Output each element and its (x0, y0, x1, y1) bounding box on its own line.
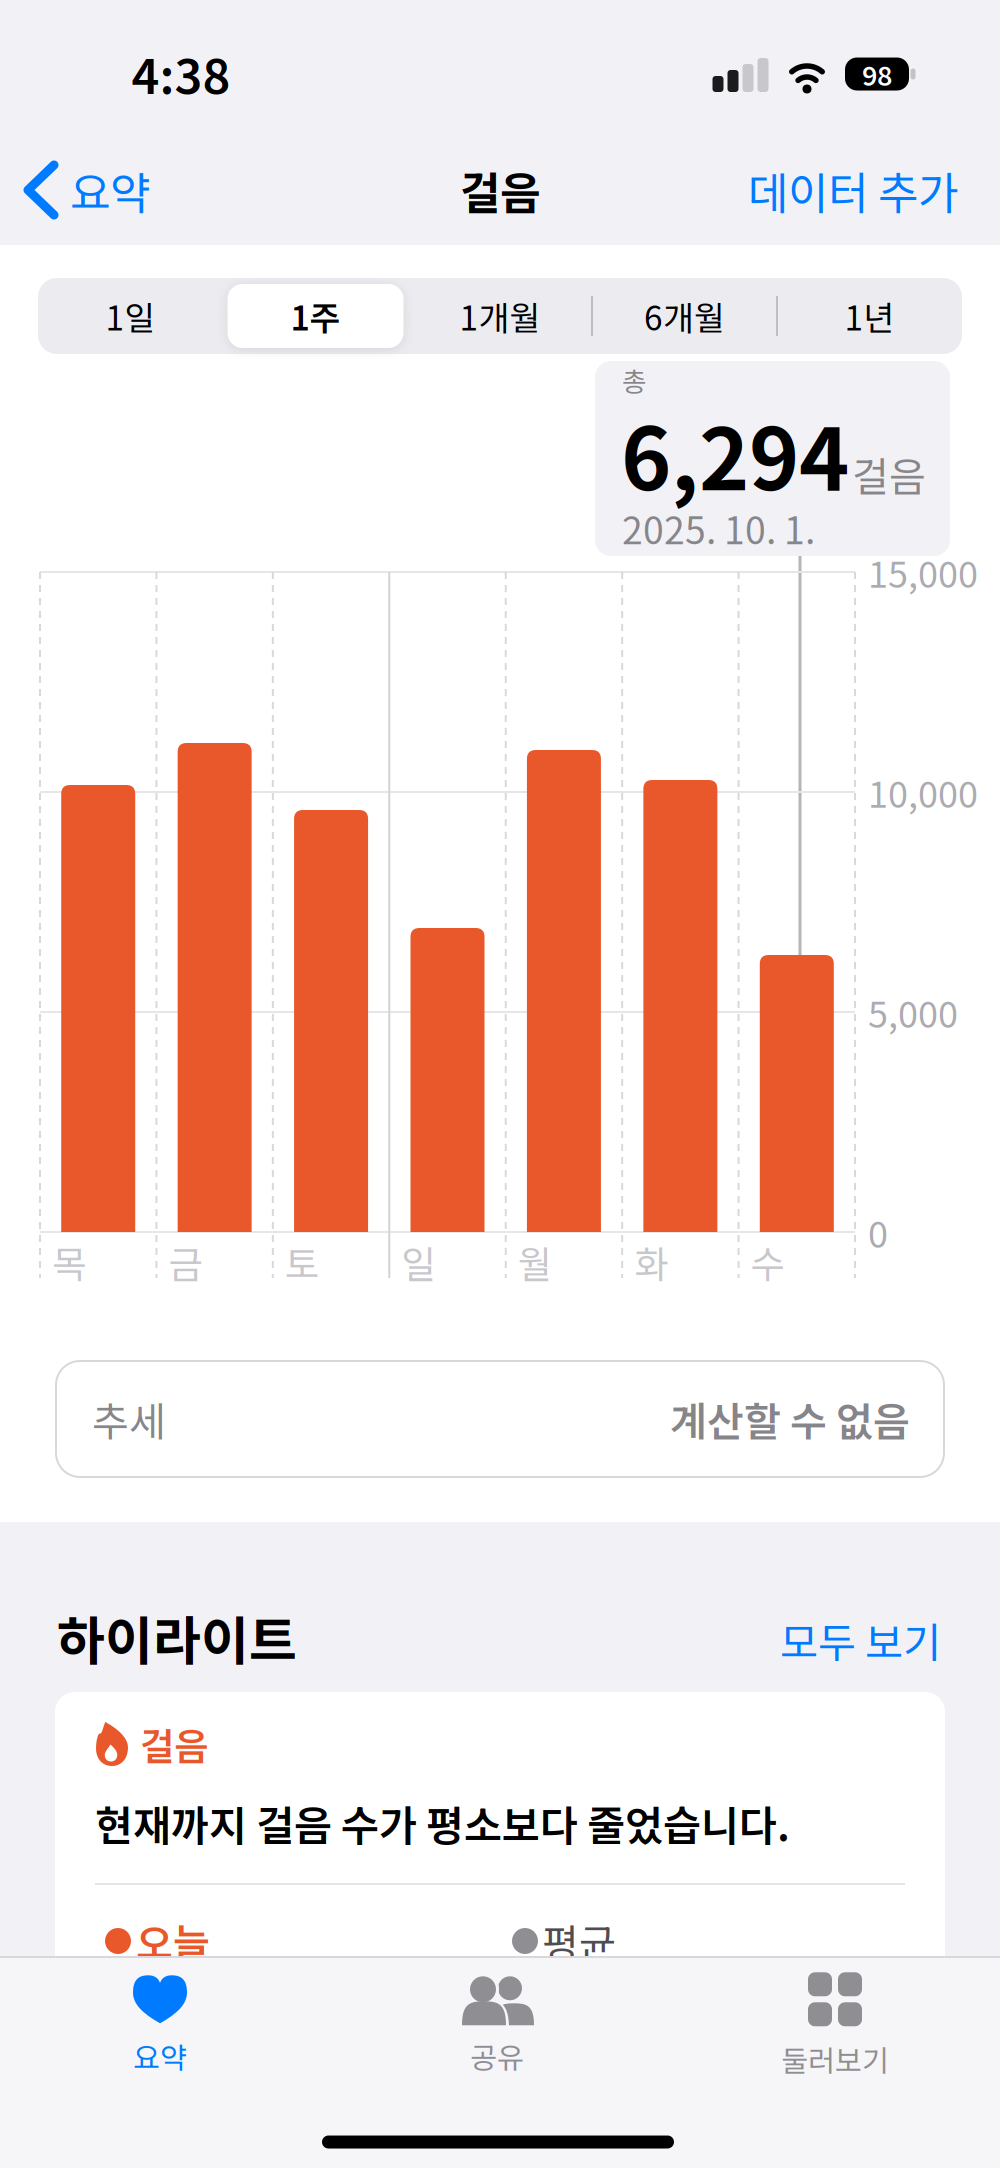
staticText: 1년 (844, 292, 894, 340)
button[interactable]: 요약 (28, 159, 150, 221)
staticText: 화 (634, 1236, 668, 1288)
staticText: 1개월 (459, 292, 540, 340)
staticText: 4:38 (131, 39, 230, 107)
staticText: 15,000 (868, 547, 978, 597)
staticText: 수 (751, 1236, 785, 1288)
staticText: 데이터 추가 (748, 159, 958, 221)
button[interactable]: 공유 (387, 1971, 607, 2081)
button[interactable]: 모두 보기 (780, 1611, 941, 1669)
staticText: 98 (862, 55, 892, 93)
staticText: 추세 (92, 1391, 166, 1447)
staticText: 현재까지 걸음 수가 평소보다 줄었습니다. (95, 1794, 790, 1852)
staticText: 둘러보기 (781, 2038, 889, 2080)
staticText: 월 (518, 1236, 552, 1288)
staticText: 토 (285, 1236, 319, 1288)
staticText: 1일 (105, 292, 155, 340)
staticText: 5,000 (868, 987, 958, 1037)
button[interactable]: 6개월 (594, 281, 774, 351)
staticText: 계산할 수 없음 (670, 1391, 910, 1447)
staticText: 2025. 10. 1. (622, 502, 815, 554)
button[interactable]: 데이터 추가 (748, 159, 958, 221)
staticText: 10,000 (868, 767, 978, 817)
staticText: 총 (622, 361, 647, 399)
staticText: 걸음 (852, 446, 926, 502)
staticText: 금 (168, 1236, 202, 1288)
staticText: 오늘 (136, 1913, 210, 1969)
button[interactable]: 둘러보기 (725, 1969, 945, 2083)
staticText: 요약 (70, 159, 150, 221)
button[interactable]: 요약 (50, 1971, 270, 2081)
button[interactable]: 1개월 (410, 281, 590, 351)
staticText: 모두 보기 (780, 1611, 941, 1669)
staticText: 1주 (290, 292, 340, 340)
staticText: 6개월 (644, 292, 725, 340)
staticText: 목 (52, 1236, 86, 1288)
button[interactable]: 걸음 (55, 1692, 945, 2022)
staticText: 0 (868, 1207, 888, 1257)
staticText: 하이라이트 (57, 1600, 297, 1674)
button[interactable]: 1주 (225, 281, 405, 351)
staticText: 걸음 (460, 159, 540, 221)
staticText: 걸음 (140, 1718, 208, 1770)
button[interactable]: 1일 (40, 281, 220, 351)
staticText: 평균 (542, 1913, 616, 1969)
staticText: 공유 (470, 2035, 524, 2077)
staticText: 요약 (133, 2035, 187, 2077)
staticText: 6,294 (621, 393, 849, 513)
button[interactable]: 1년 (779, 281, 959, 351)
staticText: 일 (401, 1236, 435, 1288)
